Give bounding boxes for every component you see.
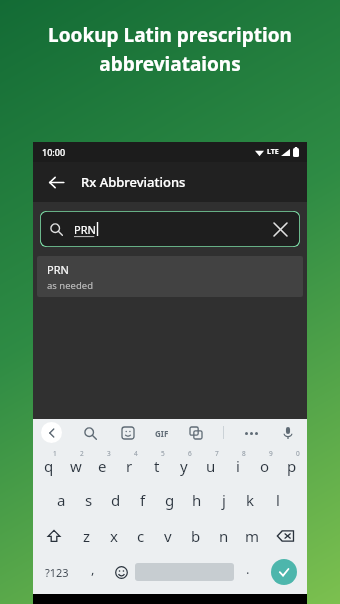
staticText: c (137, 526, 145, 546)
button[interactable]: 9 (251, 446, 278, 482)
staticText: n (219, 526, 229, 546)
button[interactable]: GIF (155, 423, 169, 443)
staticText: m (245, 526, 260, 546)
staticText: b (191, 526, 201, 546)
button[interactable]: d (102, 482, 129, 518)
staticText: h (192, 490, 202, 510)
staticText: x (110, 526, 118, 546)
staticText: p (287, 456, 297, 476)
button[interactable]: h (183, 482, 210, 518)
button[interactable]: Translate (186, 423, 206, 443)
button[interactable]: PRN (40, 211, 300, 247)
staticText: v (164, 526, 172, 546)
button[interactable]: Search (80, 423, 100, 443)
staticText: 9 (269, 449, 273, 458)
staticText: ?123 (45, 565, 69, 580)
button[interactable]: More options (241, 423, 261, 443)
button[interactable]: 6 (170, 446, 197, 482)
staticText: 1 (53, 449, 57, 458)
staticText: i (236, 456, 240, 476)
button[interactable]: 2 (62, 446, 89, 482)
button[interactable]: 8 (224, 446, 251, 482)
staticText: abbreviataions (99, 51, 241, 77)
button[interactable]: Back (39, 165, 73, 199)
staticText: u (206, 456, 216, 476)
button[interactable]: j (210, 482, 237, 518)
staticText: e (98, 456, 107, 476)
staticText: GIF (155, 428, 169, 439)
staticText: 4 (134, 449, 138, 458)
button[interactable]: Shift (35, 518, 73, 554)
button[interactable]: v (154, 518, 182, 554)
staticText: 6 (188, 449, 192, 458)
button[interactable]: . (234, 554, 262, 590)
staticText: 3 (107, 449, 111, 458)
button[interactable]: m (238, 518, 266, 554)
staticText: . (246, 560, 250, 578)
staticText: 7 (215, 449, 219, 458)
button[interactable]: Backspace (266, 518, 305, 554)
staticText: 2 (80, 449, 84, 458)
button[interactable]: z (73, 518, 100, 554)
button[interactable]: l (264, 482, 291, 518)
staticText: j (222, 490, 226, 510)
button[interactable]: a (48, 482, 75, 518)
staticText: a (57, 490, 66, 510)
button[interactable]: n (210, 518, 238, 554)
button[interactable]: PRN (37, 256, 303, 297)
button[interactable]: Enter (271, 559, 297, 585)
staticText: k (246, 490, 255, 510)
staticText: z (83, 526, 91, 546)
staticText: w (70, 456, 82, 476)
button[interactable]: 0 (278, 446, 305, 482)
staticText: q (44, 456, 54, 476)
staticText: f (140, 490, 146, 510)
button[interactable]: Emoji (107, 554, 135, 590)
button[interactable]: Clear search (268, 217, 292, 241)
button[interactable]: Stickers (118, 423, 138, 443)
staticText: , (91, 560, 95, 578)
staticText: LTE (267, 147, 279, 157)
button[interactable]: 4 (116, 446, 143, 482)
staticText: 5 (161, 449, 165, 458)
staticText: PRN (47, 262, 69, 277)
button[interactable]: b (182, 518, 210, 554)
button[interactable]: Voice input (278, 423, 298, 443)
staticText: as needed (47, 279, 93, 292)
staticText: s (85, 490, 93, 510)
staticText: Rx Abbreviations (81, 173, 186, 191)
button[interactable]: , (79, 554, 107, 590)
button[interactable]: 5 (143, 446, 170, 482)
staticText: t (154, 456, 160, 476)
staticText: 8 (242, 449, 246, 458)
button[interactable]: 1 (35, 446, 62, 482)
button[interactable]: g (156, 482, 183, 518)
staticText: 0 (296, 449, 300, 458)
button[interactable]: c (127, 518, 154, 554)
button[interactable]: f (129, 482, 156, 518)
button[interactable]: k (237, 482, 264, 518)
button[interactable]: ?123 (35, 554, 79, 590)
button[interactable]: x (100, 518, 127, 554)
button[interactable]: 3 (89, 446, 116, 482)
button[interactable]: s (75, 482, 102, 518)
staticText: l (276, 490, 280, 510)
staticText: y (180, 456, 188, 476)
staticText: Lookup Latin prescription (48, 22, 292, 48)
staticText: g (165, 490, 175, 510)
staticText: o (260, 456, 270, 476)
button[interactable]: Close toolbar (41, 422, 62, 443)
button[interactable]: 7 (197, 446, 224, 482)
staticText: r (126, 456, 133, 476)
staticText: PRN (74, 222, 96, 237)
staticText: d (111, 490, 121, 510)
staticText: 10:00 (42, 146, 66, 158)
